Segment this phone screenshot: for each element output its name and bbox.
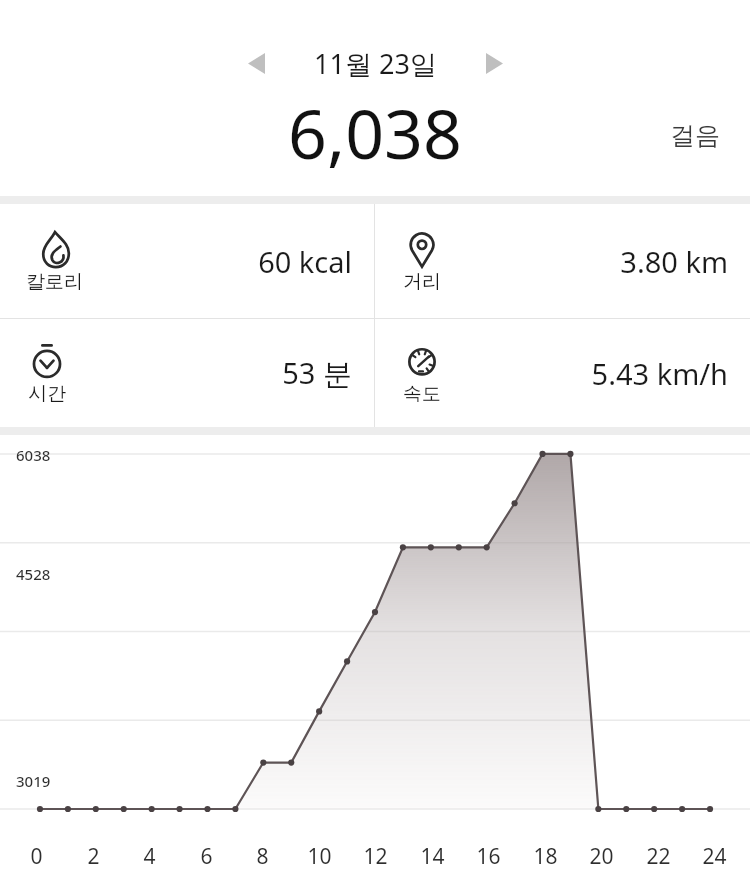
staticText: 6,038 (288, 86, 462, 179)
staticText: 3019 (16, 771, 51, 791)
staticText: 3.80 km (620, 242, 728, 281)
staticText: 4 (143, 842, 156, 871)
staticText: 20 (589, 842, 614, 871)
staticText: 18 (533, 842, 558, 871)
staticText: 6038 (16, 445, 51, 465)
staticText: 60 kcal (258, 242, 352, 281)
staticText: 시간 (28, 382, 66, 406)
staticText: 10 (307, 842, 332, 871)
button[interactable]: 칼로리 (0, 204, 374, 318)
button[interactable]: Next day (470, 41, 518, 85)
staticText: 속도 (403, 382, 441, 406)
staticText: 2 (87, 842, 100, 871)
staticText: 0 (30, 842, 43, 871)
staticText: 8 (256, 842, 269, 871)
staticText: 거리 (403, 270, 441, 294)
button[interactable]: 거리 (375, 204, 750, 318)
staticText: 53 분 (282, 353, 352, 393)
staticText: 4528 (16, 564, 51, 584)
staticText: 칼로리 (26, 270, 83, 294)
staticText: 11월 23일 (314, 45, 437, 82)
button[interactable]: 시간 (0, 319, 374, 427)
staticText: 16 (476, 842, 501, 871)
staticText: 12 (363, 842, 388, 871)
button[interactable]: 속도 (375, 319, 750, 427)
staticText: 걸음 (670, 120, 720, 151)
button[interactable]: Previous day (232, 41, 280, 85)
staticText: 5.43 km/h (591, 354, 728, 393)
staticText: 24 (702, 842, 727, 871)
staticText: 14 (420, 842, 445, 871)
staticText: 6 (200, 842, 213, 871)
staticText: 22 (646, 842, 671, 871)
